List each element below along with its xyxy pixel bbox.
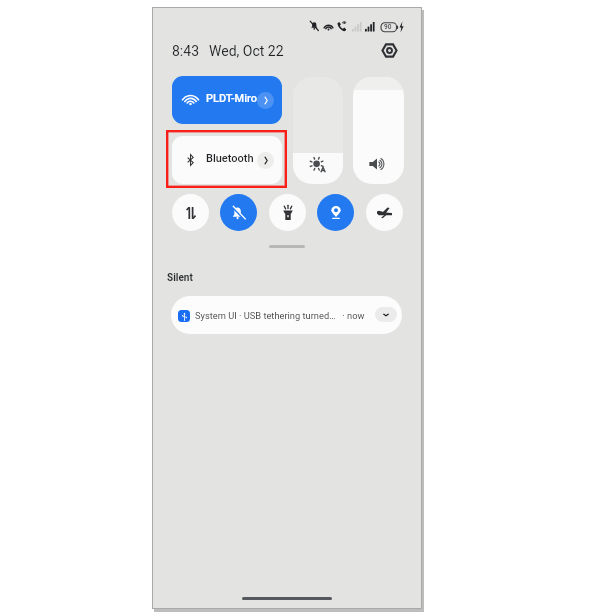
button[interactable]: Settings: [373, 34, 405, 66]
staticText: Bluetooth: [206, 152, 254, 165]
staticText: Wed, Oct 22: [209, 43, 284, 59]
staticText: PLDT-Miro: [206, 92, 257, 105]
button[interactable]: Flashlight: [269, 194, 306, 231]
button[interactable]: Brightness: [293, 77, 343, 184]
button[interactable]: Mobile data: [172, 194, 209, 231]
staticText: 8:43: [172, 43, 199, 59]
button[interactable]: Volume: [353, 77, 404, 184]
button[interactable]: Location: [317, 194, 354, 231]
button[interactable]: PLDT-Miro: [172, 76, 282, 124]
button[interactable]: Bluetooth: [172, 136, 282, 184]
button[interactable]: System UI · USB tethering turned… · now: [171, 296, 402, 334]
staticText: System UI · USB tethering turned… · now: [195, 310, 365, 321]
button[interactable]: Airplane mode: [366, 194, 403, 231]
button[interactable]: Silent mode: [220, 194, 257, 231]
staticText: Silent: [167, 272, 193, 284]
staticText: 90: [384, 23, 392, 31]
button[interactable]: Expand notification: [375, 307, 397, 322]
